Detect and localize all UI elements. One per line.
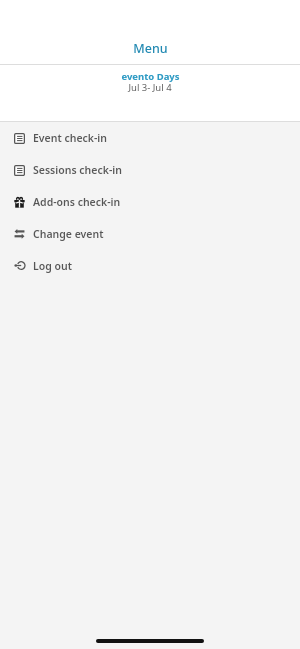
staticText: evento Days — [121, 70, 180, 83]
other: Change event — [14, 229, 25, 240]
other: Add-ons — [14, 197, 25, 208]
other: Log out — [14, 261, 25, 272]
staticText: Event check-in — [33, 131, 108, 145]
staticText: Menu — [133, 40, 168, 57]
staticText: Change event — [33, 227, 104, 241]
button[interactable]: Check-in list — [0, 154, 300, 186]
staticText: Log out — [33, 259, 72, 273]
other: Check-in list — [14, 165, 25, 176]
button[interactable]: Log out — [0, 250, 300, 282]
staticText: Jul 3- Jul 4 — [128, 81, 172, 94]
staticText: Sessions check-in — [33, 163, 122, 177]
button[interactable]: Check-in list — [0, 122, 300, 154]
button[interactable]: Add-ons — [0, 186, 300, 218]
other: Check-in list — [14, 133, 25, 144]
button[interactable]: evento Days — [0, 65, 300, 121]
button[interactable]: Change event — [0, 218, 300, 250]
staticText: Add-ons check-in — [33, 195, 121, 209]
